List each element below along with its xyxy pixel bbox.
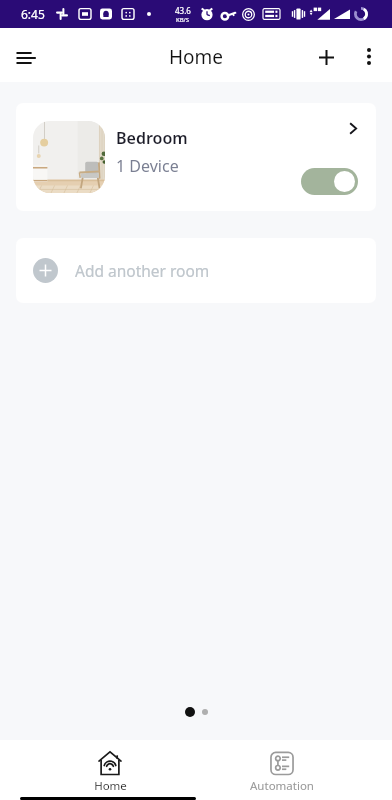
button[interactable]: Home	[62, 740, 158, 792]
staticText: KB/S	[176, 16, 190, 24]
button[interactable]: Automation	[234, 740, 330, 792]
staticText: 6:45	[21, 6, 45, 22]
staticText: Home	[94, 778, 127, 794]
button[interactable]: Menu	[6, 38, 46, 78]
button[interactable]: Bedroom	[16, 103, 376, 211]
button[interactable]: More options	[349, 36, 389, 76]
staticText: Home	[169, 44, 224, 70]
staticText: 43.6	[175, 5, 191, 16]
button[interactable]: Add another room	[16, 238, 376, 303]
staticText: Bedroom	[116, 127, 188, 149]
button[interactable]: Open room	[339, 114, 367, 142]
button[interactable]: Add	[306, 37, 346, 77]
button[interactable]: Toggle room	[301, 168, 358, 195]
staticText: Automation	[250, 778, 314, 794]
staticText: Add another room	[75, 260, 210, 281]
staticText: 1 Device	[116, 155, 179, 177]
